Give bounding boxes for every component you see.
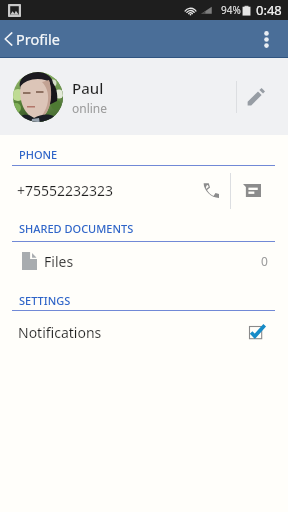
staticText: +75552232323	[17, 181, 114, 200]
staticText: SHARED DOCUMENTS	[19, 221, 134, 236]
button[interactable]: Message	[231, 168, 273, 213]
staticText: SETTINGS	[19, 293, 71, 308]
button[interactable]: Files	[0, 242, 288, 280]
staticText: Paul	[72, 78, 104, 98]
staticText: 0	[261, 253, 268, 269]
button[interactable]: Notifications	[0, 311, 288, 353]
button[interactable]: Edit	[237, 58, 288, 135]
button[interactable]: Call	[192, 168, 230, 213]
staticText: Files	[44, 252, 74, 271]
staticText: online	[72, 100, 108, 116]
button[interactable]: +75552232323	[0, 166, 190, 211]
staticText: PHONE	[19, 147, 58, 162]
staticText: 94%	[221, 3, 241, 17]
staticText: Profile	[16, 29, 60, 49]
button[interactable]: Profile photo	[13, 72, 63, 122]
staticText: 0:48	[256, 1, 282, 19]
button[interactable]: More options	[248, 20, 288, 57]
button[interactable]: Profile	[0, 20, 288, 57]
staticText: Notifications	[18, 323, 102, 342]
